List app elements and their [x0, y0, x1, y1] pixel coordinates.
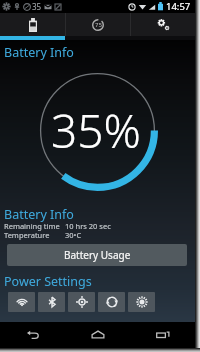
staticText: Battery Info	[4, 206, 74, 223]
staticText: Power Settings	[4, 273, 92, 290]
button[interactable]: Battery	[0, 13, 65, 36]
staticText: 14:57	[166, 0, 191, 13]
button[interactable]: Battery level	[66, 13, 130, 36]
staticText: 75	[95, 21, 102, 29]
staticText: Temperature	[4, 230, 50, 240]
button[interactable]: Settings	[131, 13, 195, 36]
staticText: 35	[32, 1, 42, 12]
button[interactable]: Bluetooth	[38, 292, 65, 312]
button[interactable]: Wi-Fi	[8, 292, 35, 312]
staticText: 10 hrs 20 sec	[65, 221, 111, 231]
button[interactable]: Back	[0, 322, 65, 348]
staticText: Battery Usage	[64, 248, 131, 262]
button[interactable]: Sync	[98, 292, 125, 312]
staticText: Remaining time	[4, 221, 60, 231]
button[interactable]: Recents	[130, 322, 195, 348]
staticText: 35%	[51, 99, 141, 162]
button[interactable]: Battery Usage	[7, 244, 187, 266]
button[interactable]: Location	[68, 292, 95, 312]
staticText: 30•C	[65, 230, 82, 240]
button[interactable]: Brightness	[128, 292, 155, 312]
staticText: Battery Info	[4, 44, 74, 61]
button[interactable]: Home	[65, 322, 130, 348]
